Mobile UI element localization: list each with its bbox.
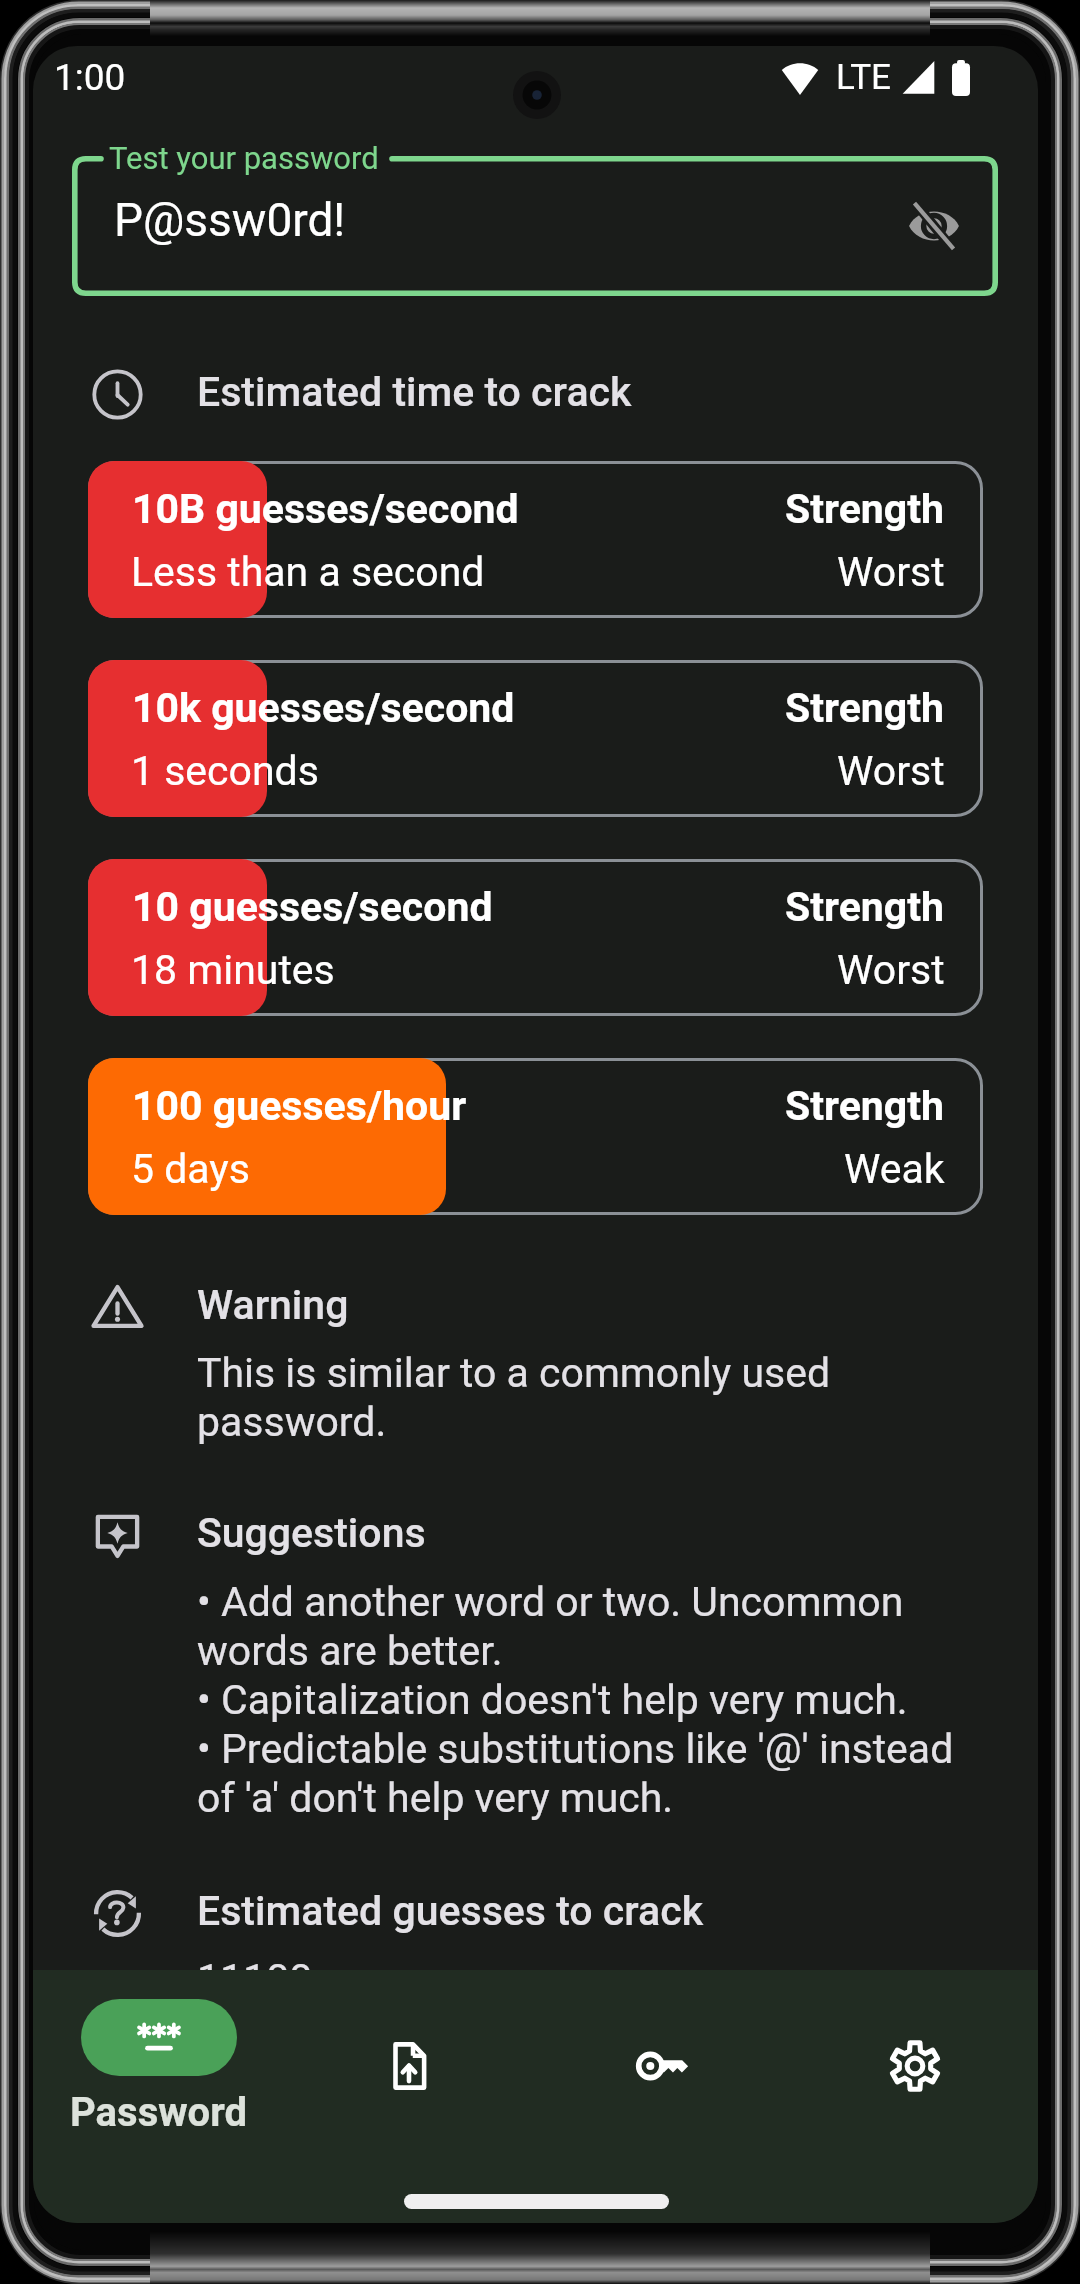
staticText: Worst: [837, 548, 945, 596]
button[interactable]: Import file: [349, 2026, 469, 2106]
staticText: Suggestions: [197, 1509, 426, 1557]
staticText: Strength: [785, 684, 945, 732]
staticText: 100 guesses/hour: [132, 1082, 467, 1130]
staticText: Worst: [837, 946, 945, 994]
button[interactable]: Test your password: [72, 156, 998, 296]
staticText: Strength: [785, 1082, 945, 1130]
staticText: Less than a second: [131, 548, 485, 596]
button[interactable]: 10 guesses/second: [88, 859, 983, 1016]
button[interactable]: 10B guesses/second: [88, 461, 983, 618]
staticText: Strength: [785, 485, 945, 533]
button[interactable]: Generate password: [603, 2026, 723, 2106]
staticText: Strength: [785, 883, 945, 931]
button[interactable]: Settings: [855, 2026, 975, 2106]
staticText: Test your password: [109, 140, 379, 176]
button[interactable]: Password: [61, 1999, 257, 2136]
staticText: Password: [70, 2089, 248, 2136]
staticText: • Add another word or two. Uncommon word…: [197, 1578, 997, 1822]
staticText: 10k guesses/second: [132, 684, 515, 732]
button[interactable]: 100 guesses/hour: [88, 1058, 983, 1215]
staticText: 11100: [197, 1955, 997, 2003]
staticText: 1:00: [54, 56, 126, 99]
staticText: P@ssw0rd!: [114, 193, 346, 247]
staticText: 10 guesses/second: [132, 883, 493, 931]
staticText: 1 seconds: [131, 747, 319, 795]
staticText: 5 days: [131, 1145, 250, 1193]
staticText: Estimated time to crack: [197, 368, 632, 416]
staticText: 10B guesses/second: [132, 485, 519, 533]
button[interactable]: Hide password: [894, 186, 974, 266]
staticText: Weak: [844, 1145, 945, 1193]
staticText: Warning: [197, 1281, 349, 1329]
staticText: 18 minutes: [131, 946, 335, 994]
button[interactable]: 10k guesses/second: [88, 660, 983, 817]
staticText: LTE: [836, 57, 891, 98]
staticText: This is similar to a commonly used passw…: [197, 1349, 997, 1446]
staticText: Estimated guesses to crack: [197, 1887, 704, 1935]
staticText: Worst: [837, 747, 945, 795]
